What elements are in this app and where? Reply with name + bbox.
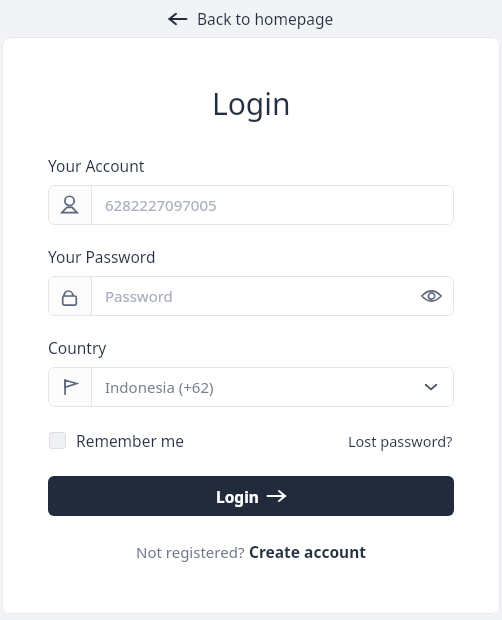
staticText: Create account: [249, 541, 366, 562]
button[interactable]: Back to homepage: [162, 6, 340, 31]
staticText: Your Account: [48, 155, 145, 176]
staticText: Not registered?: [136, 542, 249, 562]
button[interactable]: Password: [48, 276, 454, 316]
button[interactable]: Lost password?: [347, 428, 454, 454]
staticText: 6282227097005: [105, 195, 217, 215]
staticText: Back to homepage: [197, 8, 334, 29]
button[interactable]: Account: [48, 185, 454, 225]
staticText: Password: [105, 286, 173, 306]
button[interactable]: Create account: [249, 541, 366, 562]
staticText: Remember me: [76, 430, 185, 451]
staticText: Login: [216, 486, 259, 507]
button[interactable]: Remember me: [48, 427, 186, 454]
staticText: Login: [212, 83, 291, 124]
other: Country: [48, 367, 91, 407]
other: Account: [48, 185, 91, 225]
button[interactable]: Show password: [412, 277, 450, 315]
button[interactable]: Login: [48, 476, 454, 516]
staticText: Lost password?: [348, 431, 453, 451]
other: Password: [48, 276, 91, 316]
staticText: Indonesia (+62): [105, 377, 214, 397]
staticText: Country: [48, 337, 107, 358]
button[interactable]: Country: [48, 367, 454, 407]
button[interactable]: Select country: [412, 368, 450, 406]
staticText: Your Password: [48, 246, 156, 267]
